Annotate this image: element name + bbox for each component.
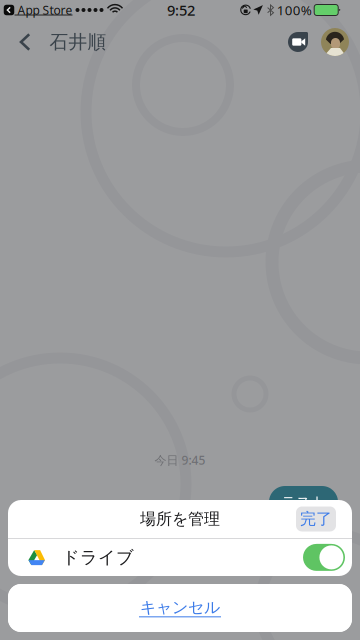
- staticText: 100%: [277, 1, 312, 19]
- staticText: キャンセル: [140, 598, 220, 617]
- staticText: 場所を管理: [140, 509, 220, 529]
- staticText: 石井順: [49, 30, 106, 53]
- staticText: ドライブ: [62, 547, 134, 568]
- button[interactable]: キャンセル: [8, 584, 352, 632]
- button[interactable]: ドライブ: [8, 539, 352, 576]
- staticText: 完了: [300, 509, 332, 529]
- staticText: App Store: [17, 2, 72, 18]
- staticText: 9:52: [167, 0, 195, 20]
- button[interactable]: Back: [0, 20, 49, 64]
- staticText: テスト: [281, 493, 326, 511]
- button[interactable]: 完了: [296, 506, 336, 531]
- button[interactable]: Video call: [282, 20, 314, 64]
- staticText: 今日 9:45: [154, 452, 205, 468]
- button[interactable]: Profile: [314, 20, 360, 64]
